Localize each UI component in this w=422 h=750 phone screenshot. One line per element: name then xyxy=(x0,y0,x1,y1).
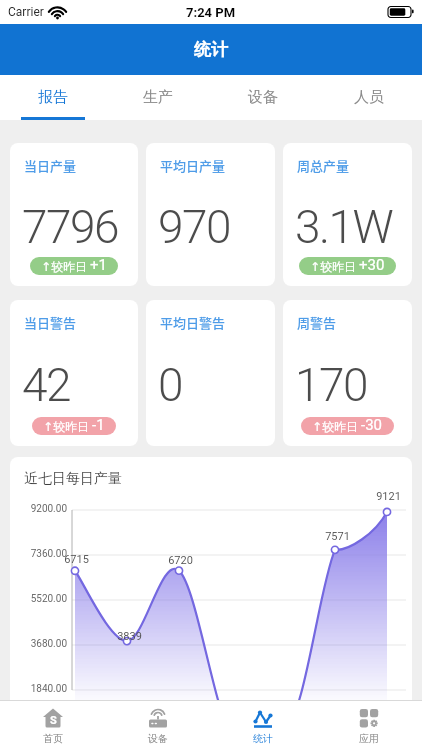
staticText: 应用 xyxy=(359,732,379,745)
staticText: 3680.00 xyxy=(30,638,67,650)
staticText: -1 xyxy=(92,417,105,434)
staticText: 人员 xyxy=(354,88,384,107)
button[interactable]: 平均日警告 xyxy=(146,300,275,446)
staticText: 7796 xyxy=(22,200,119,254)
staticText: 3.1W xyxy=(295,200,393,254)
staticText: 42 xyxy=(22,358,71,412)
staticText: 5520.00 xyxy=(30,593,67,605)
button[interactable]: 设备 xyxy=(210,75,316,120)
staticText: 6720 xyxy=(168,554,193,567)
button[interactable]: 应用 xyxy=(316,701,422,750)
staticText: +30 xyxy=(359,257,385,274)
button[interactable]: 当日产量 xyxy=(10,143,138,286)
staticText: ↑较昨日 xyxy=(312,419,359,434)
button[interactable]: 平均日产量 xyxy=(146,143,275,286)
staticText: 设备 xyxy=(248,88,278,107)
staticText: 平均日产量 xyxy=(160,156,226,175)
staticText: 近七日每日产量 xyxy=(24,470,122,488)
button[interactable]: 人员 xyxy=(316,75,422,120)
staticText: 首页 xyxy=(43,732,63,745)
button[interactable]: 周总产量 xyxy=(283,143,412,286)
button[interactable]: S xyxy=(0,701,105,750)
staticText: 统计 xyxy=(253,732,273,745)
staticText: Carrier xyxy=(8,5,44,19)
staticText: 1840.00 xyxy=(30,683,67,695)
button[interactable]: 报告 xyxy=(0,75,105,120)
staticText: 周警告 xyxy=(297,313,337,332)
staticText: 统计 xyxy=(194,39,228,60)
staticText: ↑较昨日 xyxy=(41,259,88,274)
staticText: 7:24 PM xyxy=(186,5,236,20)
staticText: 当日产量 xyxy=(24,156,77,175)
button[interactable]: 生产 xyxy=(105,75,210,120)
staticText: 平均日警告 xyxy=(160,313,226,332)
button[interactable]: 当日警告 xyxy=(10,300,138,446)
staticText: -30 xyxy=(361,417,383,434)
staticText: 周总产量 xyxy=(297,156,350,175)
button[interactable]: 设备 xyxy=(105,701,210,750)
staticText: 生产 xyxy=(143,88,173,107)
staticText: 7360.00 xyxy=(30,548,67,560)
staticText: S xyxy=(50,714,57,727)
staticText: ↑较昨日 xyxy=(43,419,90,434)
staticText: 9200.00 xyxy=(30,503,67,515)
staticText: ↑较昨日 xyxy=(310,259,357,274)
button[interactable]: 周警告 xyxy=(283,300,412,446)
staticText: 当日警告 xyxy=(24,313,77,332)
staticText: 6715 xyxy=(64,553,89,566)
staticText: 170 xyxy=(295,358,368,412)
staticText: 3839 xyxy=(117,630,142,643)
button[interactable]: 统计 xyxy=(210,701,316,750)
staticText: 970 xyxy=(158,200,231,254)
staticText: 7571 xyxy=(325,530,350,543)
staticText: +1 xyxy=(90,257,107,274)
staticText: 报告 xyxy=(38,88,68,107)
staticText: 9121 xyxy=(376,490,401,503)
staticText: 0 xyxy=(158,358,183,412)
staticText: 设备 xyxy=(148,732,168,745)
